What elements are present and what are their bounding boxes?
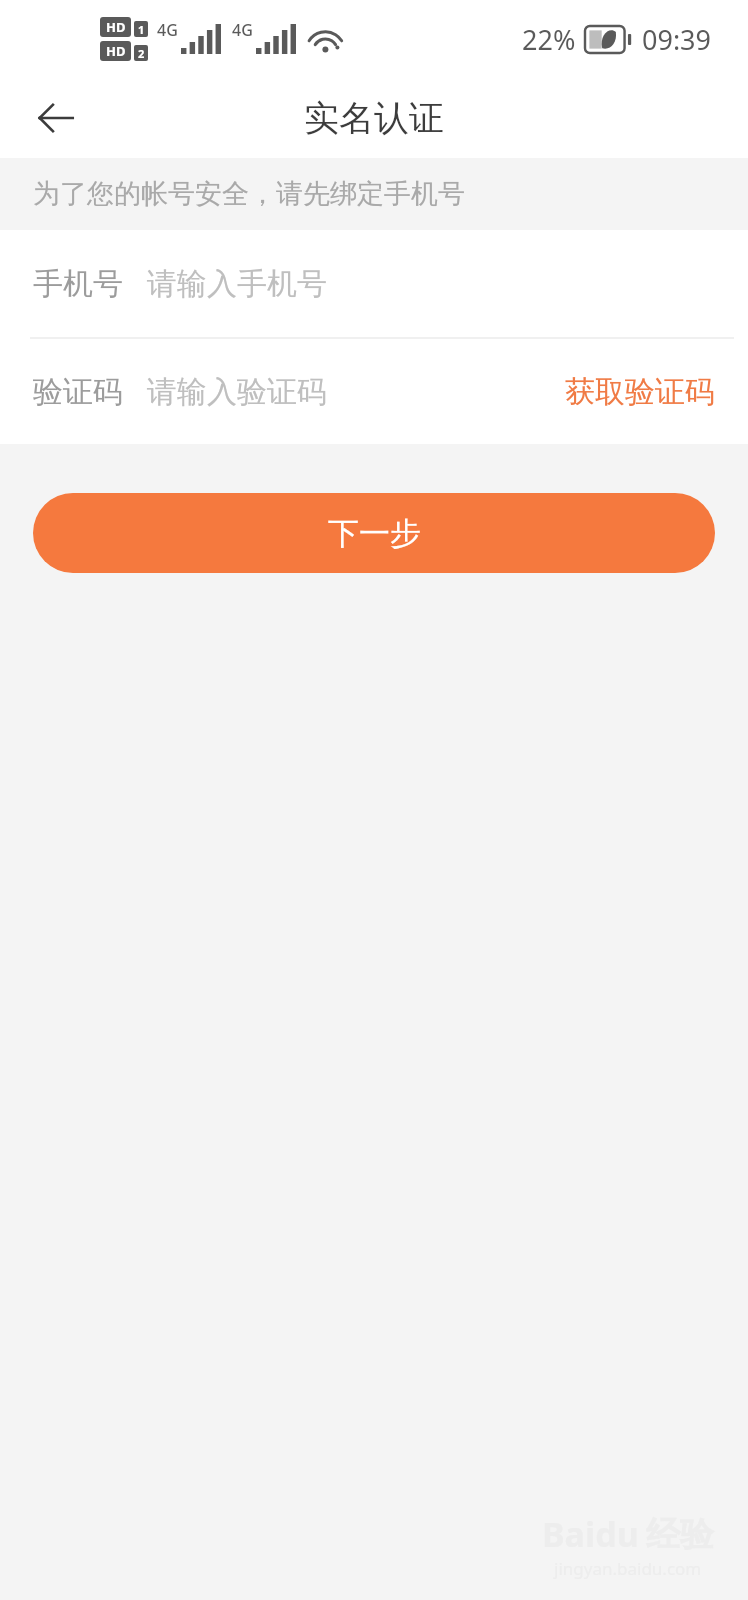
staticText: HD	[106, 18, 126, 36]
staticText: 经验	[646, 1513, 714, 1556]
staticText: 2	[138, 46, 145, 61]
staticText: HD	[106, 42, 126, 60]
staticText: 22%	[522, 21, 576, 58]
staticText: 09:39	[642, 21, 712, 58]
staticText: 1	[138, 22, 145, 37]
button[interactable]: Back	[22, 84, 90, 152]
staticText: 4G	[232, 19, 253, 41]
staticText: 请输入验证码	[147, 373, 327, 411]
staticText: 4G	[157, 19, 178, 41]
button[interactable]: 手机号	[0, 230, 748, 337]
button[interactable]: 获取验证码	[532, 353, 748, 431]
staticText: 手机号	[33, 265, 123, 303]
staticText: 实名认证	[304, 96, 444, 140]
staticText: 验证码	[33, 373, 123, 411]
button[interactable]: 下一步	[33, 493, 715, 573]
staticText: 获取验证码	[565, 373, 715, 411]
staticText: 为了您的帐号安全，请先绑定手机号	[33, 177, 465, 211]
staticText: 请输入手机号	[147, 265, 327, 303]
staticText: 下一步	[328, 514, 421, 553]
